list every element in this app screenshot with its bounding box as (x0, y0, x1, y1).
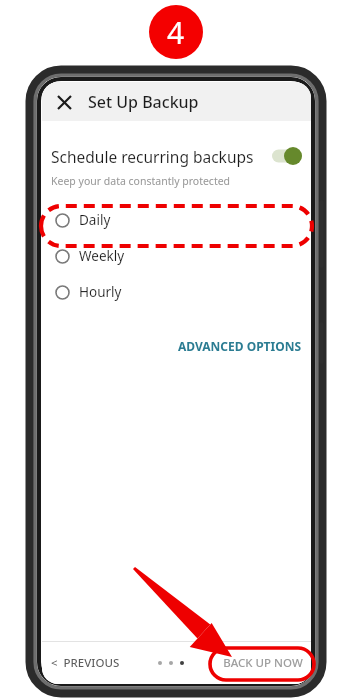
button[interactable]: BACK UP NOW (223, 655, 303, 671)
button[interactable]: < PREVIOUS (51, 655, 120, 671)
staticText: Daily (79, 211, 111, 229)
staticText: ADVANCED OPTIONS (178, 338, 302, 354)
staticText: < PREVIOUS (51, 655, 120, 671)
staticText: Weekly (79, 247, 125, 265)
staticText: Schedule recurring backups (51, 146, 272, 167)
button[interactable]: Schedule recurring backups (42, 140, 311, 172)
button[interactable]: Close (48, 86, 80, 118)
staticText: Set Up Backup (88, 91, 199, 113)
button[interactable]: Weekly (42, 238, 311, 274)
other: Schedule recurring backups toggle (272, 147, 302, 165)
staticText: 4 (167, 12, 185, 53)
button[interactable]: Hourly (42, 274, 311, 310)
button[interactable]: ADVANCED OPTIONS (42, 334, 311, 358)
staticText: Keep your data constantly protected (51, 174, 231, 188)
button[interactable]: Daily (42, 202, 311, 238)
staticText: Hourly (79, 283, 122, 301)
staticText: BACK UP NOW (223, 655, 303, 671)
